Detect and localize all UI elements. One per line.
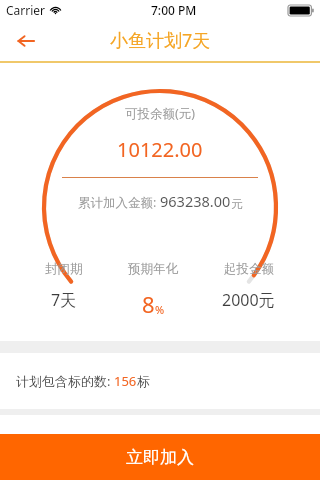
- staticText: 7天: [51, 289, 77, 311]
- staticText: 可投余额(元): [125, 105, 196, 122]
- staticText: 计划包含标的数:: [16, 372, 114, 390]
- staticText: %: [155, 302, 165, 317]
- staticText: 10122.00: [117, 136, 203, 163]
- staticText: 累计加入金额:: [78, 194, 160, 211]
- staticText: 立即加入: [126, 447, 194, 468]
- staticText: Carrier: [6, 2, 46, 18]
- staticText: 8: [142, 289, 155, 319]
- staticText: 小鱼计划7天: [110, 28, 211, 53]
- staticText: 7:00 PM: [151, 2, 197, 18]
- staticText: 156: [114, 372, 137, 390]
- staticText: 标: [137, 373, 150, 389]
- staticText: 963238.00: [160, 191, 231, 211]
- staticText: 起投金额: [224, 261, 274, 277]
- staticText: 元: [231, 197, 243, 211]
- staticText: 预期年化: [128, 261, 178, 277]
- staticText: 封闭期: [45, 261, 83, 277]
- staticText: 2000元: [222, 289, 275, 311]
- button[interactable]: Back: [8, 23, 44, 59]
- button[interactable]: 立即加入: [0, 434, 320, 480]
